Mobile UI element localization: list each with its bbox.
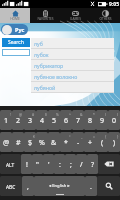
button[interactable]: %	[48, 110, 60, 130]
button[interactable]: .	[85, 176, 97, 196]
staticText: лубок	[34, 51, 49, 58]
button[interactable]: лубяной	[31, 82, 114, 93]
staticText: (	[105, 112, 107, 117]
button[interactable]: %	[36, 132, 48, 152]
button[interactable]: лубрикатор	[31, 60, 114, 71]
staticText: +	[88, 138, 93, 148]
staticText: %	[39, 138, 45, 148]
button[interactable]: :	[54, 154, 65, 174]
staticText: ,	[27, 182, 29, 192]
button[interactable]: {	[96, 132, 108, 152]
staticText: 6	[64, 116, 69, 126]
staticText: €	[33, 134, 35, 139]
staticText: луб	[34, 40, 43, 47]
button[interactable]: GAMES	[60, 8, 90, 23]
staticText: OTHERS	[99, 17, 112, 21]
button[interactable]: ,	[22, 176, 34, 196]
staticText: ABC	[6, 184, 16, 191]
staticText: '	[48, 160, 50, 170]
button[interactable]: #	[12, 132, 24, 152]
staticText: }	[117, 134, 119, 139]
staticText: 1	[4, 116, 9, 126]
staticText: Search	[8, 39, 24, 46]
staticText: _	[81, 134, 83, 139]
staticText: @	[19, 112, 23, 117]
button[interactable]: °	[60, 132, 72, 152]
button[interactable]: ABC	[0, 176, 22, 196]
button[interactable]: =	[84, 132, 96, 152]
button[interactable]: *	[84, 110, 96, 130]
staticText: лубрикатор	[34, 62, 64, 69]
staticText: ^	[69, 112, 71, 117]
staticText: 3	[28, 116, 33, 126]
staticText: 9	[100, 116, 105, 126]
button[interactable]: /	[76, 154, 87, 174]
staticText: 4	[40, 116, 45, 126]
button[interactable]: @	[12, 110, 24, 130]
button[interactable]: ?	[87, 154, 98, 174]
staticText: $	[28, 138, 33, 148]
button[interactable]: '	[43, 154, 54, 174]
button[interactable]: Search	[2, 38, 30, 47]
button[interactable]: &	[48, 132, 60, 152]
button[interactable]: _	[72, 132, 84, 152]
staticText: {	[105, 134, 107, 139]
staticText: °	[69, 134, 71, 139]
other: Space	[34, 176, 85, 196]
staticText: .	[90, 182, 92, 192]
staticText: ;	[70, 160, 72, 170]
button[interactable]: @	[0, 132, 12, 152]
button[interactable]: #	[24, 110, 36, 130]
staticText: &	[51, 138, 57, 148]
staticText: )	[117, 112, 119, 117]
button[interactable]: &	[72, 110, 84, 130]
button[interactable]: !	[21, 154, 32, 174]
button[interactable]: "	[32, 154, 43, 174]
button[interactable]: )	[108, 110, 120, 130]
button[interactable]: !	[0, 110, 12, 130]
button[interactable]: FAVORITES	[30, 8, 60, 23]
staticText: *	[64, 138, 68, 148]
button[interactable]: Space	[34, 176, 85, 196]
staticText: (	[101, 138, 104, 148]
button[interactable]: лубяное волокно	[31, 71, 114, 82]
staticText: /	[80, 160, 83, 170]
button[interactable]: лубок	[31, 49, 114, 60]
staticText: 2	[16, 116, 21, 126]
staticText: :	[59, 160, 61, 170]
button[interactable]: OTHERS	[90, 8, 120, 23]
staticText: )	[113, 138, 116, 148]
staticText: лубяной	[34, 84, 56, 91]
button[interactable]: ^	[60, 110, 72, 130]
staticText: =	[93, 134, 95, 139]
staticText: -	[77, 138, 80, 148]
staticText: &	[80, 112, 83, 117]
button[interactable]: Search	[97, 176, 120, 196]
staticText: GAMES	[70, 17, 81, 21]
staticText: 5	[52, 116, 57, 126]
staticText: ALT	[6, 162, 15, 169]
staticText: #	[16, 138, 21, 148]
staticText: !	[26, 160, 28, 170]
staticText: ?	[91, 160, 95, 170]
button[interactable]: ALT	[0, 154, 21, 174]
other: Search	[105, 182, 113, 190]
button[interactable]: $	[36, 110, 48, 130]
button[interactable]: (	[96, 110, 108, 130]
button[interactable]: }	[108, 132, 120, 152]
staticText: 0	[112, 116, 117, 126]
button[interactable]: €	[24, 132, 36, 152]
button[interactable]: Backspace	[98, 154, 120, 174]
button[interactable]: Рус	[1, 24, 28, 35]
other: Backspace	[104, 161, 114, 167]
staticText: *	[93, 112, 95, 117]
button[interactable]: ;	[65, 154, 76, 174]
staticText: FAVORITES	[37, 17, 54, 21]
staticText: @	[3, 138, 10, 148]
staticText: ◂ English ▸	[49, 183, 70, 189]
button[interactable]: луб	[31, 38, 114, 49]
staticText: $	[45, 112, 47, 117]
staticText: Рус	[15, 26, 25, 33]
button[interactable]: HOME	[0, 8, 30, 23]
staticText: !	[10, 112, 11, 117]
